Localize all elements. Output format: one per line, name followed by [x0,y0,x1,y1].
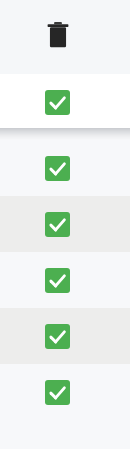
button[interactable] [45,90,70,115]
button[interactable] [45,380,70,405]
button[interactable] [0,140,130,196]
button[interactable] [45,324,70,349]
button[interactable] [0,252,130,308]
button[interactable] [45,156,70,181]
button[interactable]: Delete [43,18,73,52]
button[interactable] [45,212,70,237]
button[interactable] [0,308,130,364]
other: Delete [45,20,71,50]
button[interactable] [0,364,130,420]
button[interactable] [45,268,70,293]
button[interactable] [0,74,130,128]
button[interactable] [0,196,130,252]
